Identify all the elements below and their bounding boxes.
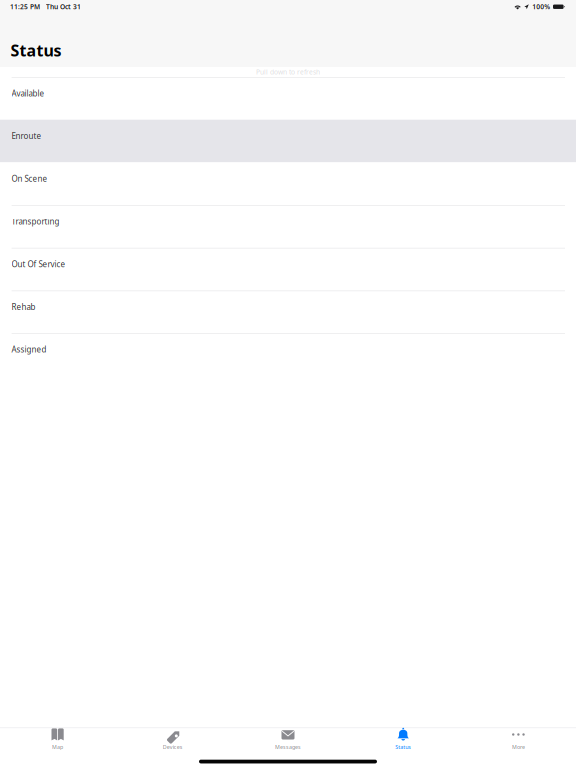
button[interactable]: Map (0, 724, 115, 764)
staticText: Map (52, 743, 63, 750)
button[interactable]: Devices (115, 724, 230, 764)
staticText: Rehab (12, 301, 36, 312)
staticText: Status (10, 40, 61, 61)
staticText: Transporting (12, 216, 60, 227)
button[interactable]: Messages (230, 724, 346, 764)
button[interactable]: Available (0, 77, 576, 120)
button[interactable]: On Scene (0, 162, 576, 205)
button[interactable]: Out Of Service (0, 248, 576, 290)
staticText: Available (12, 88, 45, 99)
button[interactable]: Status (346, 724, 461, 764)
staticText: More (512, 743, 525, 750)
staticText: Pull down to refresh (256, 68, 320, 76)
staticText: Status (395, 743, 411, 750)
staticText: On Scene (12, 173, 48, 184)
staticText: Thu Oct 31 (46, 2, 81, 11)
staticText: Devices (163, 743, 183, 750)
staticText: Assigned (12, 344, 47, 355)
button[interactable]: More (461, 724, 576, 764)
button[interactable]: Assigned (0, 333, 576, 376)
staticText: 11:25 PM (10, 2, 40, 11)
staticText: Messages (275, 743, 301, 750)
button[interactable]: Transporting (0, 205, 576, 248)
button[interactable]: Rehab (0, 290, 576, 333)
button[interactable]: Enroute (0, 120, 576, 162)
staticText: Out Of Service (12, 259, 66, 269)
staticText: 100% (532, 2, 550, 11)
staticText: Enroute (12, 131, 42, 141)
